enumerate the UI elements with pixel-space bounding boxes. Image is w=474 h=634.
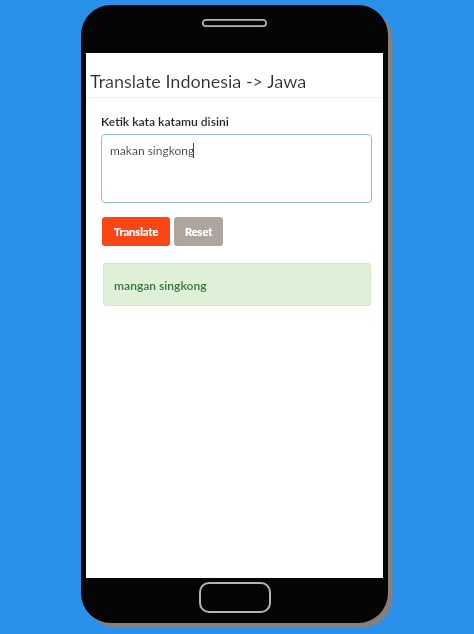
staticText: Ketik kata katamu disini (101, 114, 229, 128)
staticText: mangan singkong (114, 278, 207, 292)
staticText: makan singkong (110, 143, 195, 157)
staticText: Translate (114, 225, 159, 238)
button[interactable]: Translate (102, 217, 170, 246)
button[interactable]: makan singkong (101, 134, 372, 203)
staticText: Translate Indonesia -> Jawa (90, 70, 307, 92)
button[interactable]: Home (199, 582, 271, 613)
staticText: Reset (185, 225, 213, 238)
button[interactable]: Reset (174, 217, 223, 246)
